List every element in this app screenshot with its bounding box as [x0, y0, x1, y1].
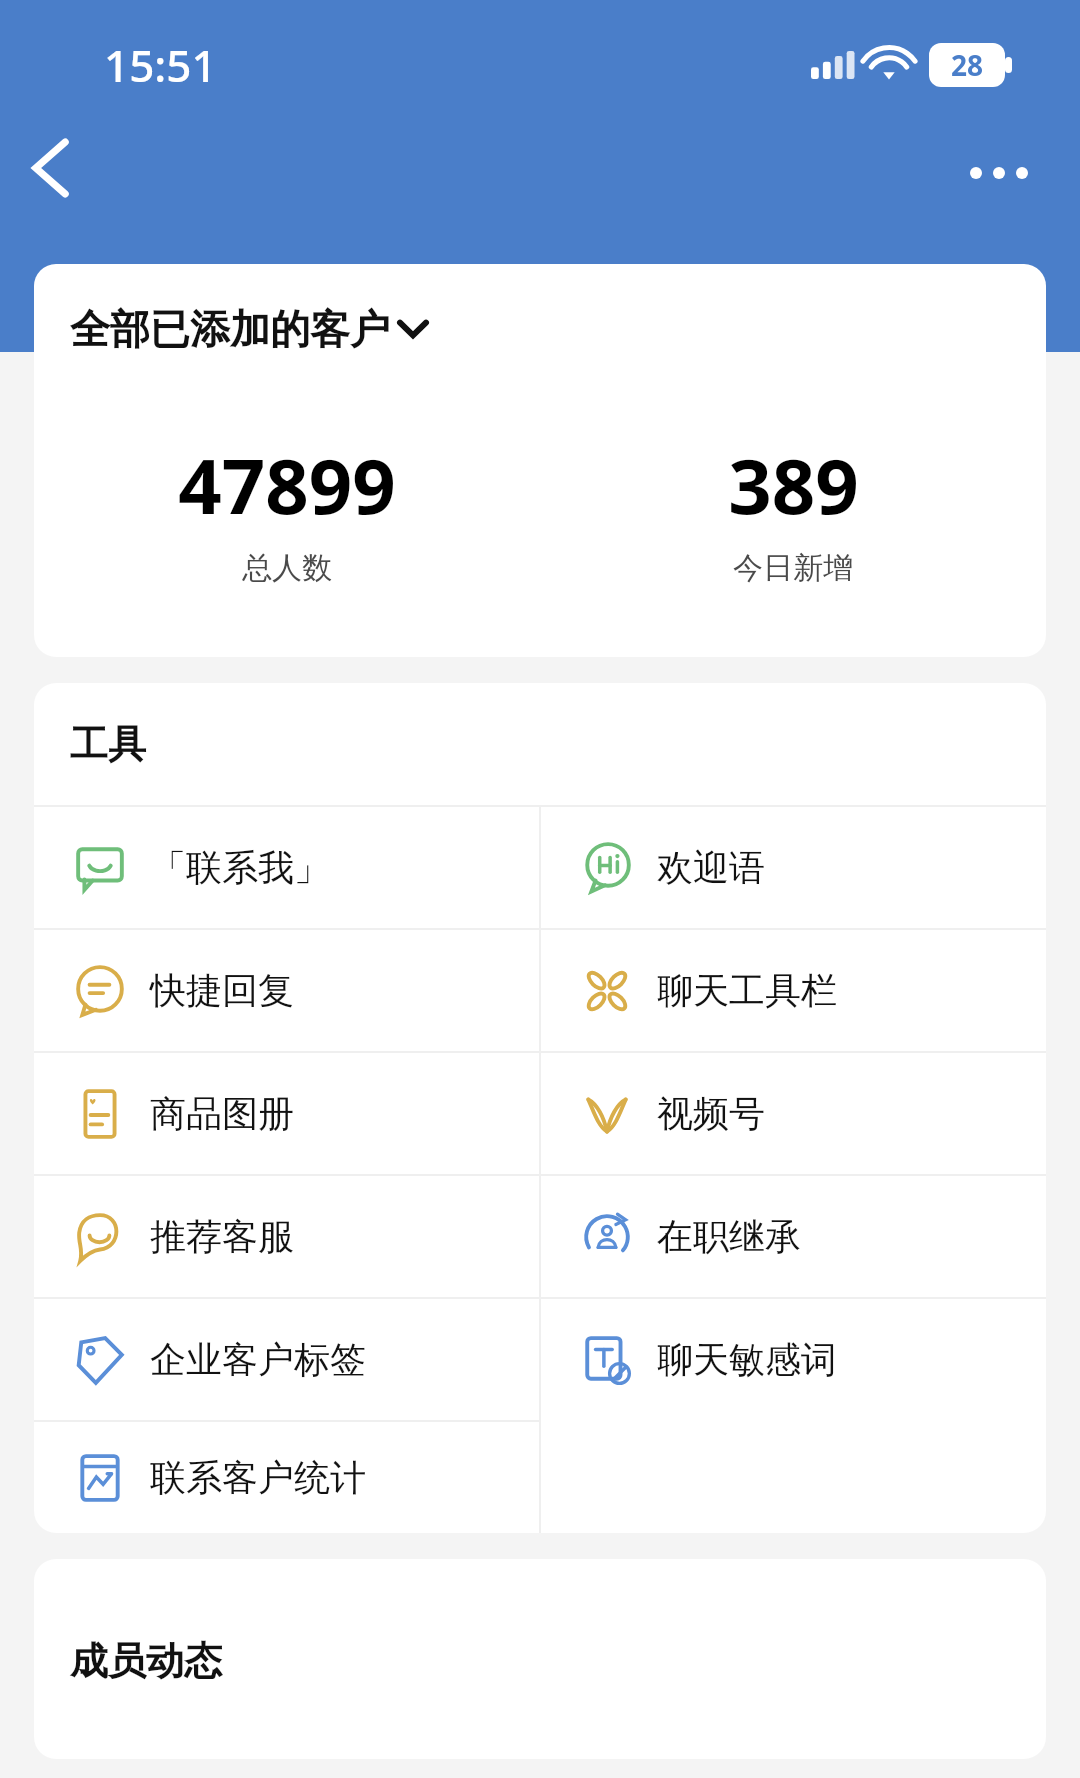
button[interactable]: 快捷回复 — [34, 930, 539, 1051]
staticText: 工具 — [70, 720, 146, 768]
button[interactable]: 联系客户统计 — [34, 1422, 539, 1533]
staticText: 欢迎语 — [657, 845, 765, 890]
button[interactable]: 欢迎语 — [541, 807, 1046, 928]
button[interactable]: 聊天工具栏 — [541, 930, 1046, 1051]
staticText: 视频号 — [657, 1091, 765, 1136]
staticText: 今日新增 — [733, 549, 853, 587]
button[interactable]: 「联系我」 — [34, 807, 539, 928]
staticText: 47899 — [178, 433, 396, 537]
staticText: 成员动态 — [70, 1637, 222, 1685]
button[interactable]: 企业客户标签 — [34, 1299, 539, 1420]
button[interactable]: 视频号 — [541, 1053, 1046, 1174]
staticText: 389 — [728, 433, 859, 537]
button[interactable]: 商品图册 — [34, 1053, 539, 1174]
staticText: 总人数 — [242, 549, 332, 587]
staticText: 商品图册 — [150, 1091, 294, 1136]
button[interactable]: Back — [10, 128, 90, 208]
staticText: 联系客户统计 — [150, 1455, 366, 1500]
button[interactable]: 聊天敏感词 — [541, 1299, 1046, 1420]
staticText: 全部已添加的客户 — [70, 304, 390, 354]
staticText: 推荐客服 — [150, 1214, 294, 1259]
staticText: 28 — [951, 46, 984, 84]
button[interactable]: 全部已添加的客户 — [70, 304, 426, 354]
staticText: 「联系我」 — [150, 845, 330, 890]
staticText: 聊天工具栏 — [657, 968, 837, 1013]
staticText: 企业客户标签 — [150, 1337, 366, 1382]
staticText: 聊天敏感词 — [657, 1337, 837, 1382]
staticText: 15:51 — [104, 35, 217, 95]
button[interactable]: More options — [954, 138, 1044, 208]
button[interactable]: 在职继承 — [541, 1176, 1046, 1297]
staticText: 快捷回复 — [150, 968, 294, 1013]
staticText: 在职继承 — [657, 1214, 801, 1259]
button[interactable]: 推荐客服 — [34, 1176, 539, 1297]
